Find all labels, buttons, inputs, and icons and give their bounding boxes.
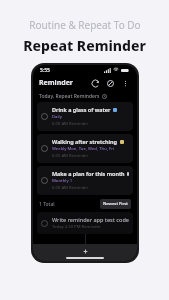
staticText: Routine & Repeat To Do [29, 18, 141, 32]
button[interactable]: Filter [104, 77, 116, 89]
button[interactable]: Make a plan for this month [37, 166, 133, 195]
staticText: Today, Repeat Reminders [39, 93, 100, 100]
staticText: Today 2:30 PM Reminder [52, 224, 101, 230]
button[interactable]: Repeat [89, 77, 101, 89]
button[interactable]: More options [119, 77, 131, 89]
button[interactable]: Add reminder [81, 247, 89, 255]
staticText: 6:00 AM Reminder [52, 185, 89, 191]
staticText: Weekly Mon, Tue, Wed, Thu, Fri [52, 146, 115, 152]
staticText: Monthly 1 [52, 178, 73, 184]
staticText: Walking after stretching [52, 138, 118, 145]
staticText: Write reminder app test code [52, 216, 129, 223]
staticText: 1 Total [39, 201, 55, 208]
button[interactable]: Walking after stretching [37, 134, 133, 163]
staticText: Daily [52, 114, 62, 120]
staticText: 5:55 [40, 67, 50, 74]
staticText: 6:05 AM Reminder [52, 153, 89, 159]
staticText: 6:00 AM Reminder [52, 121, 89, 127]
staticText: Drink a glass of water [52, 106, 111, 113]
button[interactable]: Newest First [100, 199, 131, 209]
staticText: Reminder [39, 78, 73, 88]
staticText: Newest First [103, 201, 128, 207]
button[interactable]: Drink a glass of water [37, 102, 133, 131]
button[interactable]: Write reminder app test code [37, 212, 133, 234]
staticText: Make a plan for this month [52, 170, 125, 177]
staticText: Repeat Reminder [23, 36, 146, 55]
